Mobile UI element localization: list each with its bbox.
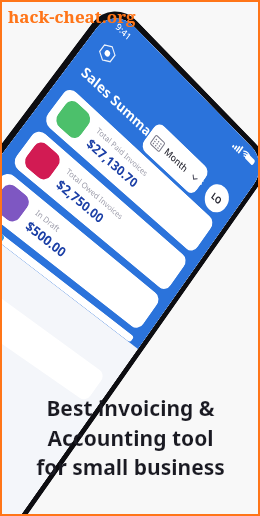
button[interactable] xyxy=(0,212,134,343)
staticText: hack-cheat.org xyxy=(8,5,136,28)
staticText: $2,750.00 xyxy=(53,175,108,227)
button[interactable]: Total Paid Invoices xyxy=(42,86,216,254)
staticText: LO xyxy=(209,189,225,208)
staticText: In Draft xyxy=(34,207,62,234)
button[interactable]: LO xyxy=(200,178,234,218)
staticText: 9:41 xyxy=(114,20,134,42)
staticText: Sales Summary xyxy=(78,62,165,150)
staticText: Total Paid Invoices xyxy=(94,125,150,178)
staticText: Month xyxy=(162,144,191,175)
button[interactable]: In Draft xyxy=(0,170,162,331)
staticText: Total Owed Invoices xyxy=(64,165,126,222)
button[interactable]: Month xyxy=(144,125,206,192)
staticText: Receipts xyxy=(0,232,6,281)
staticText: $500.00 xyxy=(22,217,70,261)
button[interactable]: Total Owed Invoices xyxy=(11,127,189,293)
staticText: $27,130.70 xyxy=(83,134,141,191)
staticText: S A L E S xyxy=(180,160,206,188)
staticText: Best invoicing & Accounting tool for sma… xyxy=(36,394,225,481)
